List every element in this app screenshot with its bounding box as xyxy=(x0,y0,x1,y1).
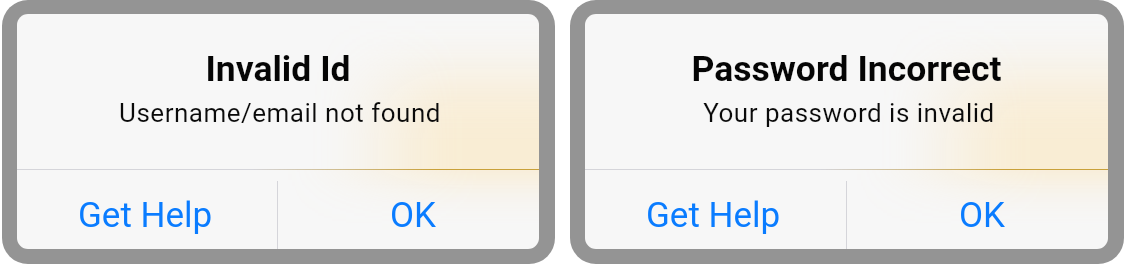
staticText: Your password is invalid xyxy=(703,98,995,128)
button[interactable]: OK xyxy=(278,181,539,249)
staticText: Username/email not found xyxy=(119,98,441,128)
staticText: Password Incorrect xyxy=(691,48,1002,90)
staticText: OK xyxy=(390,195,437,236)
button[interactable]: OK xyxy=(847,181,1108,249)
staticText: OK xyxy=(959,195,1006,236)
button[interactable]: Get Help xyxy=(585,181,846,249)
staticText: Get Help xyxy=(78,195,213,236)
staticText: Get Help xyxy=(646,195,781,236)
button[interactable]: Get Help xyxy=(17,181,277,249)
staticText: Invalid Id xyxy=(205,48,351,90)
